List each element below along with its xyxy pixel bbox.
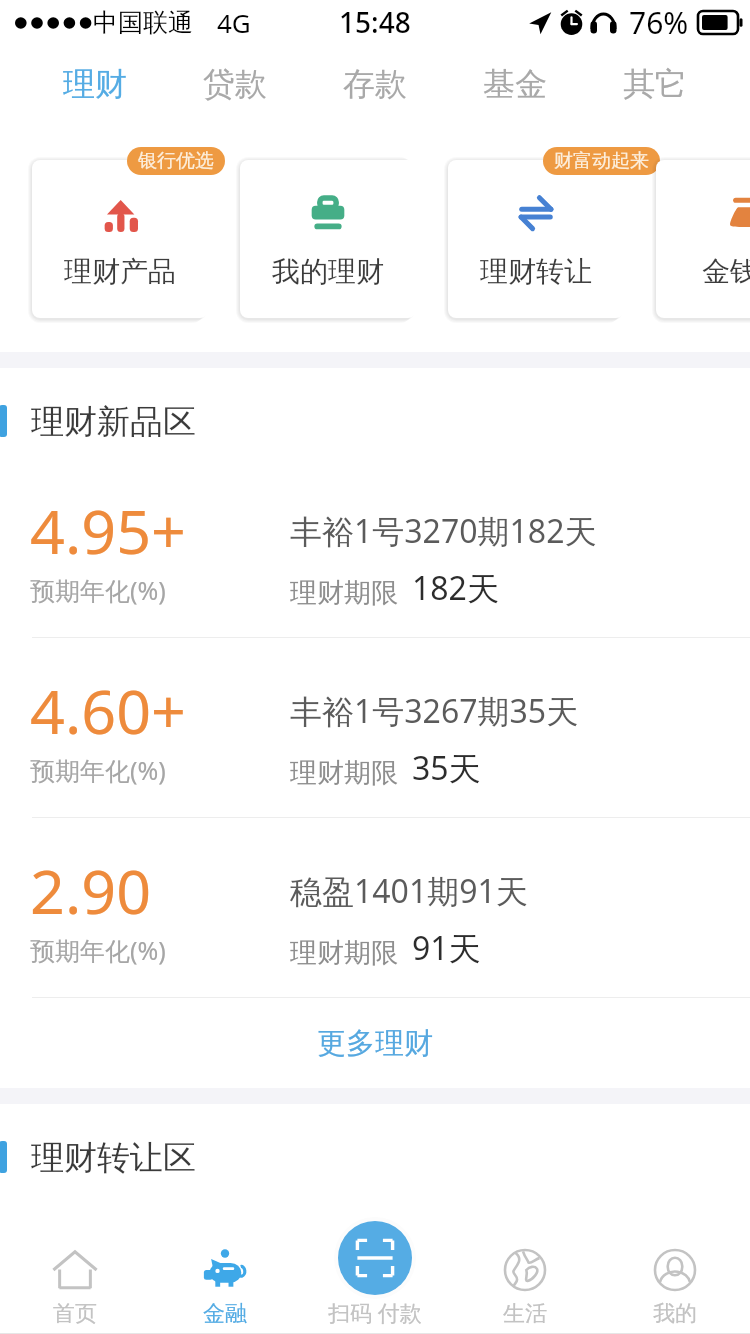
staticText: 理财期限 — [290, 936, 398, 970]
staticText: 理财转让区 — [31, 1137, 196, 1179]
staticText: 理财新品区 — [31, 401, 196, 443]
button[interactable]: 更多理财 — [0, 998, 750, 1088]
button[interactable]: 首页 — [0, 1236, 150, 1334]
staticText: 其它 — [623, 64, 687, 104]
button[interactable]: 扫码 付款 — [315, 1204, 435, 1334]
staticText: 76% — [629, 2, 689, 43]
button[interactable]: 4.95+ — [0, 458, 750, 637]
button[interactable]: 我的理财 — [240, 160, 416, 318]
staticText: 更多理财 — [317, 1025, 433, 1062]
staticText: 理财 — [63, 64, 127, 104]
staticText: 财富动起来 — [554, 149, 649, 173]
staticText: 首页 — [53, 1300, 97, 1328]
staticText: 预期年化(%) — [30, 933, 166, 967]
button[interactable]: 金融 — [150, 1236, 300, 1334]
staticText: 银行优选 — [138, 149, 214, 173]
staticText: 金融 — [203, 1300, 247, 1328]
button[interactable]: 4.60+ — [0, 638, 750, 817]
staticText: 丰裕1号3270期182天 — [290, 509, 597, 553]
staticText: 存款 — [343, 64, 407, 104]
staticText: 理财期限 — [290, 576, 398, 610]
button[interactable]: 金钱包 — [656, 160, 750, 318]
staticText: 理财产品 — [64, 254, 176, 289]
staticText: 我的 — [653, 1300, 697, 1328]
staticText: 我的理财 — [272, 254, 384, 289]
staticText: 4.95+ — [30, 489, 186, 572]
staticText: 贷款 — [203, 64, 267, 104]
staticText: 182天 — [412, 566, 499, 610]
staticText: 丰裕1号3267期35天 — [290, 689, 579, 733]
staticText: 稳盈1401期91天 — [290, 869, 528, 913]
button[interactable]: 基金 — [445, 44, 585, 124]
button[interactable]: 理财转让 — [448, 160, 624, 318]
button[interactable]: 贷款 — [165, 44, 305, 124]
staticText: 扫码 付款 — [328, 1297, 422, 1327]
staticText: 理财期限 — [290, 756, 398, 790]
staticText: 15:48 — [339, 3, 411, 41]
button[interactable]: 理财产品 — [32, 160, 208, 318]
staticText: 2.90 — [30, 849, 152, 932]
staticText: 4G — [217, 5, 251, 40]
button[interactable]: 其它 — [585, 44, 725, 124]
button[interactable]: 生活 — [450, 1236, 600, 1334]
staticText: 91天 — [412, 926, 481, 970]
staticText: 理财转让 — [480, 254, 592, 289]
button[interactable]: 存款 — [305, 44, 445, 124]
staticText: 4.60+ — [30, 669, 186, 752]
staticText: 预期年化(%) — [30, 753, 166, 787]
staticText: 生活 — [503, 1300, 547, 1328]
staticText: 预期年化(%) — [30, 573, 166, 607]
staticText: 金钱包 — [702, 254, 750, 289]
button[interactable]: 2.90 — [0, 818, 750, 997]
staticText: 中国联通 — [93, 7, 193, 38]
button[interactable]: 我的 — [600, 1236, 750, 1334]
button[interactable]: 理财 — [25, 44, 165, 124]
staticText: 35天 — [412, 746, 481, 790]
staticText: 基金 — [483, 64, 547, 104]
